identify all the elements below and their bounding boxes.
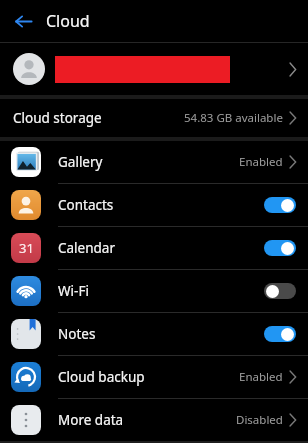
staticText: More data bbox=[58, 411, 124, 429]
button[interactable]: Gallery bbox=[0, 141, 308, 183]
button[interactable]: Cloud storage bbox=[0, 99, 308, 137]
staticText: Disabled bbox=[236, 412, 283, 428]
button[interactable]: On bbox=[264, 240, 296, 256]
button[interactable]: Wi-Fi bbox=[0, 270, 308, 312]
staticText: Cloud storage bbox=[13, 109, 102, 127]
staticText: Gallery bbox=[58, 153, 103, 171]
staticText: Enabled bbox=[239, 369, 283, 385]
button[interactable]: Back bbox=[0, 0, 46, 42]
staticText: Calendar bbox=[58, 239, 115, 257]
button[interactable]: Off bbox=[264, 283, 296, 299]
staticText: Notes bbox=[58, 325, 96, 343]
staticText: Cloud backup bbox=[58, 368, 145, 386]
button[interactable] bbox=[0, 43, 308, 95]
button[interactable]: Notes bbox=[0, 313, 308, 355]
button[interactable]: On bbox=[264, 326, 296, 342]
staticText: Cloud bbox=[46, 10, 90, 32]
button[interactable]: Cloud backup bbox=[0, 356, 308, 398]
button[interactable]: 31 bbox=[0, 227, 308, 269]
button[interactable]: On bbox=[264, 197, 296, 213]
staticText: Contacts bbox=[58, 196, 114, 214]
button[interactable]: More data bbox=[0, 399, 308, 441]
staticText: 31 bbox=[19, 239, 34, 257]
staticText: Enabled bbox=[239, 154, 283, 170]
button[interactable]: Contacts bbox=[0, 184, 308, 226]
staticText: Wi-Fi bbox=[58, 282, 89, 300]
staticText: 54.83 GB available bbox=[184, 110, 283, 126]
